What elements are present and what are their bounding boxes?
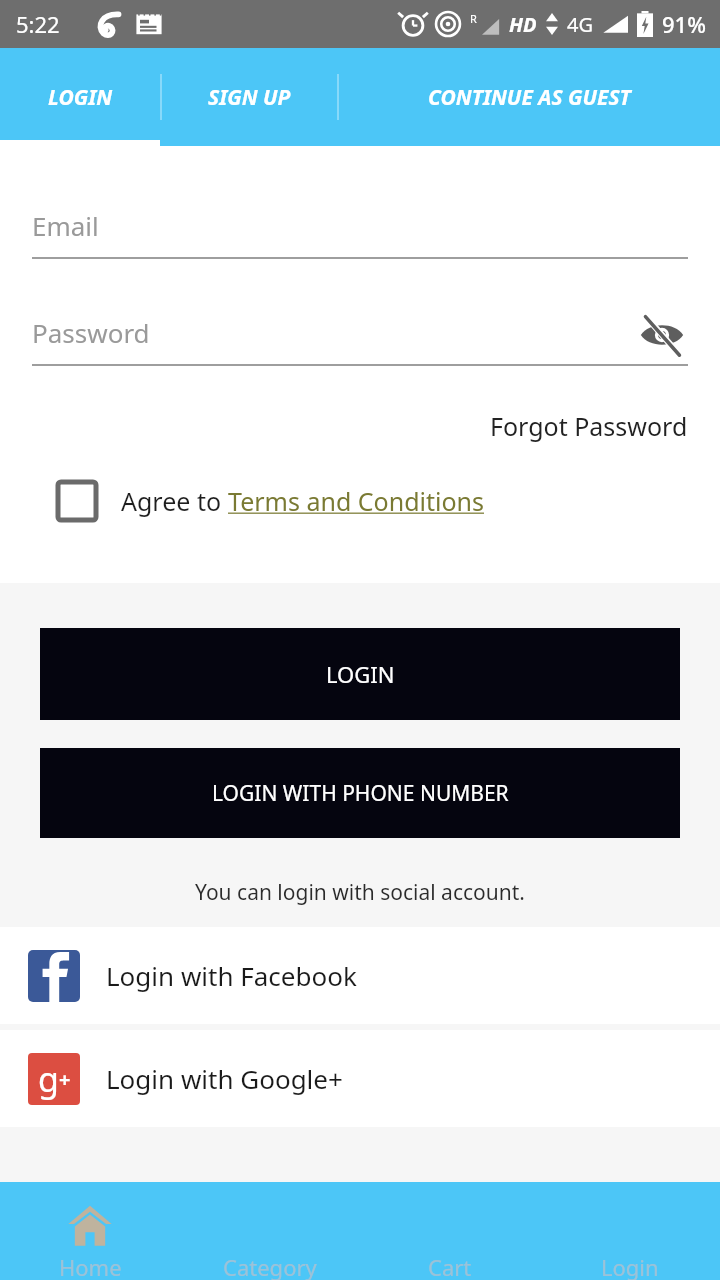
staticText: Cart bbox=[428, 1252, 472, 1280]
button[interactable]: LOGIN bbox=[40, 628, 680, 720]
button[interactable]: Terms and Conditions bbox=[228, 484, 485, 518]
staticText: Login with Google+ bbox=[106, 1061, 343, 1096]
staticText: Home bbox=[59, 1252, 122, 1280]
staticText: LOGIN bbox=[48, 83, 113, 112]
button[interactable]: SIGN UP bbox=[162, 48, 337, 146]
button[interactable]: LOGIN bbox=[0, 48, 160, 146]
staticText: You can login with social account. bbox=[0, 878, 720, 907]
staticText: 4G bbox=[567, 11, 593, 38]
staticText: CONTINUE AS GUEST bbox=[428, 83, 631, 112]
button[interactable]: Email bbox=[32, 208, 688, 259]
staticText: R bbox=[470, 11, 477, 26]
staticText: Category bbox=[223, 1252, 317, 1280]
button[interactable]: Category bbox=[180, 1182, 360, 1280]
staticText: + bbox=[59, 1066, 71, 1093]
staticText: 5:22 bbox=[16, 9, 60, 39]
button[interactable]: Home bbox=[0, 1182, 180, 1280]
staticText: Login with Facebook bbox=[106, 958, 357, 993]
staticText: Password bbox=[32, 315, 150, 350]
button[interactable]: Password bbox=[32, 315, 688, 367]
button[interactable]: Agree to terms checkbox bbox=[57, 481, 97, 521]
staticText: LOGIN WITH PHONE NUMBER bbox=[212, 779, 509, 808]
button[interactable]: Forgot Password bbox=[490, 409, 688, 443]
button[interactable]: g bbox=[0, 1030, 720, 1127]
staticText: Agree to bbox=[121, 484, 228, 518]
staticText: LOGIN bbox=[326, 659, 395, 689]
button[interactable]: Show password bbox=[636, 309, 688, 361]
staticText: Email bbox=[32, 208, 99, 243]
button[interactable]: Login with Facebook bbox=[0, 927, 720, 1024]
button[interactable]: LOGIN WITH PHONE NUMBER bbox=[40, 748, 680, 838]
staticText: 91% bbox=[662, 9, 706, 39]
staticText: Login bbox=[601, 1252, 659, 1280]
staticText: g bbox=[38, 1056, 59, 1102]
staticText: HD bbox=[509, 11, 537, 38]
button[interactable]: CONTINUE AS GUEST bbox=[339, 48, 720, 146]
staticText: SIGN UP bbox=[208, 83, 291, 112]
button[interactable]: Cart bbox=[360, 1182, 540, 1280]
button[interactable]: Login bbox=[540, 1182, 720, 1280]
